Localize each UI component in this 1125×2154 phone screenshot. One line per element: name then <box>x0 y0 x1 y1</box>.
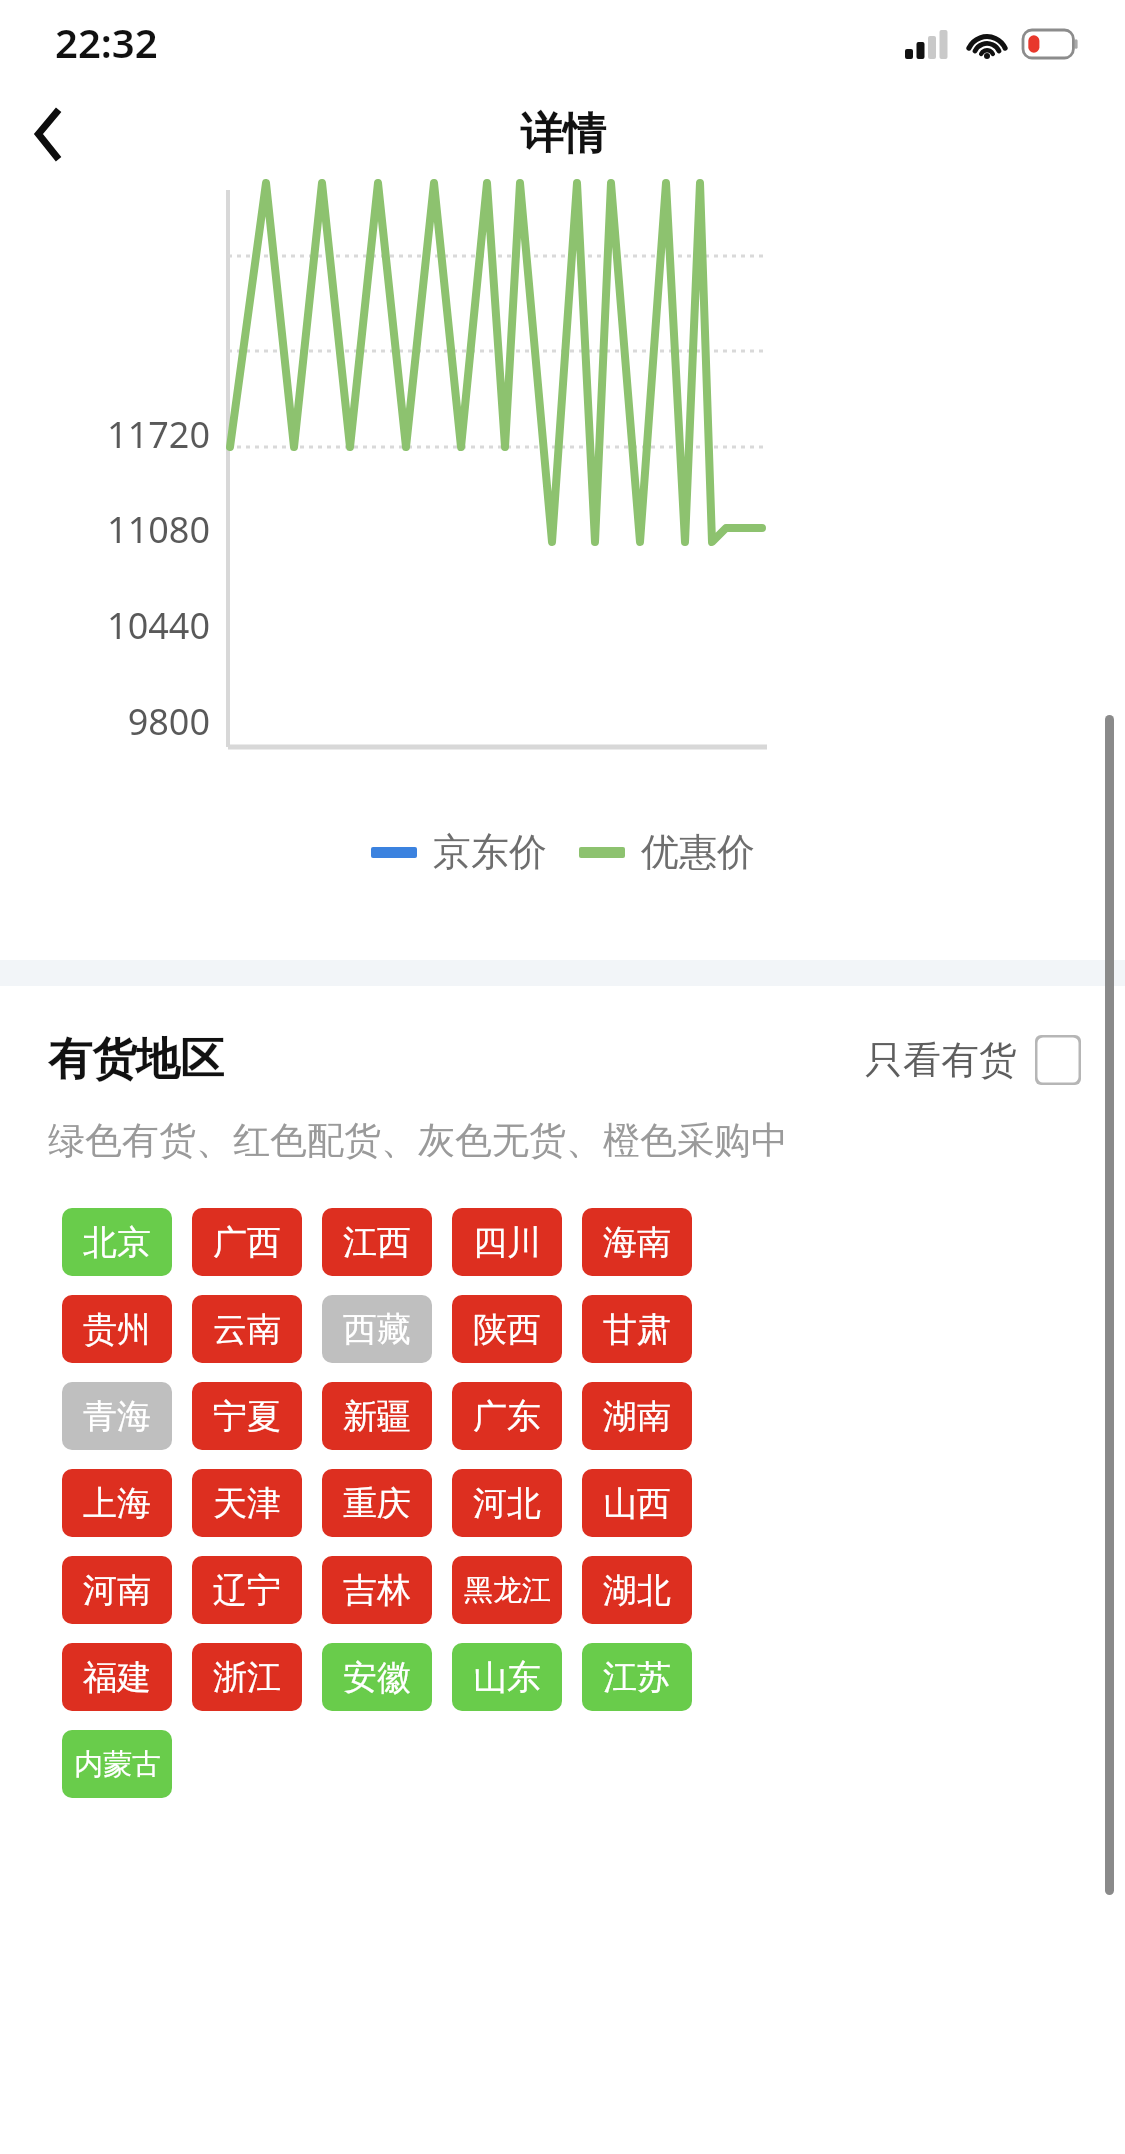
staticText: 甘肃 <box>603 1308 671 1351</box>
staticText: 天津 <box>213 1482 281 1525</box>
button[interactable]: 安徽 <box>322 1643 432 1711</box>
button[interactable]: 江西 <box>322 1208 432 1276</box>
button[interactable]: 天津 <box>192 1469 302 1537</box>
staticText: 西藏 <box>343 1308 411 1351</box>
staticText: 重庆 <box>343 1482 411 1525</box>
staticText: 四川 <box>473 1221 541 1264</box>
staticText: 新疆 <box>343 1395 411 1438</box>
staticText: 海南 <box>603 1221 671 1264</box>
staticText: 22:32 <box>55 15 158 69</box>
button[interactable]: 广东 <box>452 1382 562 1450</box>
button[interactable]: 新疆 <box>322 1382 432 1450</box>
staticText: 福建 <box>83 1656 151 1699</box>
staticText: 陕西 <box>473 1308 541 1351</box>
staticText: 青海 <box>83 1395 151 1438</box>
staticText: 只看有货 <box>865 1036 1017 1084</box>
button[interactable]: 河北 <box>452 1469 562 1537</box>
staticText: 绿色有货、红色配货、灰色无货、橙色采购中 <box>48 1117 788 1164</box>
button[interactable]: 甘肃 <box>582 1295 692 1363</box>
button[interactable]: 浙江 <box>192 1643 302 1711</box>
button[interactable]: 只看有货 <box>865 1035 1081 1085</box>
button[interactable]: 山西 <box>582 1469 692 1537</box>
staticText: 宁夏 <box>213 1395 281 1438</box>
button[interactable]: 北京 <box>62 1208 172 1276</box>
staticText: 北京 <box>83 1221 151 1264</box>
staticText: 山东 <box>473 1656 541 1699</box>
staticText: 安徽 <box>343 1656 411 1699</box>
staticText: 江苏 <box>603 1656 671 1699</box>
staticText: 上海 <box>83 1482 151 1525</box>
button[interactable]: 陕西 <box>452 1295 562 1363</box>
button[interactable]: 重庆 <box>322 1469 432 1537</box>
button[interactable]: 山东 <box>452 1643 562 1711</box>
button[interactable]: 黑龙江 <box>452 1556 562 1624</box>
staticText: 详情 <box>520 107 606 161</box>
button[interactable]: 吉林 <box>322 1556 432 1624</box>
staticText: 江西 <box>343 1221 411 1264</box>
staticText: 有货地区 <box>48 1032 224 1087</box>
staticText: 9800 <box>30 697 210 746</box>
staticText: 云南 <box>213 1308 281 1351</box>
staticText: 湖南 <box>603 1395 671 1438</box>
staticText: 内蒙古 <box>74 1746 161 1783</box>
staticText: 11720 <box>30 410 210 459</box>
button[interactable]: 宁夏 <box>192 1382 302 1450</box>
button[interactable]: 辽宁 <box>192 1556 302 1624</box>
staticText: 浙江 <box>213 1656 281 1699</box>
button[interactable]: 青海 <box>62 1382 172 1450</box>
button[interactable]: 湖南 <box>582 1382 692 1450</box>
button[interactable]: 江苏 <box>582 1643 692 1711</box>
button[interactable]: 云南 <box>192 1295 302 1363</box>
staticText: 10440 <box>30 601 210 650</box>
staticText: 广西 <box>213 1221 281 1264</box>
button[interactable]: 河南 <box>62 1556 172 1624</box>
button[interactable]: 广西 <box>192 1208 302 1276</box>
staticText: 河北 <box>473 1482 541 1525</box>
staticText: 湖北 <box>603 1569 671 1612</box>
staticText: 广东 <box>473 1395 541 1438</box>
button[interactable]: 贵州 <box>62 1295 172 1363</box>
button[interactable]: 海南 <box>582 1208 692 1276</box>
staticText: 黑龙江 <box>464 1572 551 1609</box>
button[interactable]: 上海 <box>62 1469 172 1537</box>
staticText: 京东价 <box>433 828 547 876</box>
staticText: 河南 <box>83 1569 151 1612</box>
button[interactable]: Back <box>0 88 96 180</box>
button[interactable]: 内蒙古 <box>62 1730 172 1798</box>
staticText: 辽宁 <box>213 1569 281 1612</box>
button[interactable]: 西藏 <box>322 1295 432 1363</box>
button[interactable]: 湖北 <box>582 1556 692 1624</box>
staticText: 山西 <box>603 1482 671 1525</box>
staticText: 优惠价 <box>641 828 755 876</box>
button[interactable]: 福建 <box>62 1643 172 1711</box>
staticText: 11080 <box>30 505 210 554</box>
button[interactable]: 四川 <box>452 1208 562 1276</box>
staticText: 吉林 <box>343 1569 411 1612</box>
staticText: 贵州 <box>83 1308 151 1351</box>
